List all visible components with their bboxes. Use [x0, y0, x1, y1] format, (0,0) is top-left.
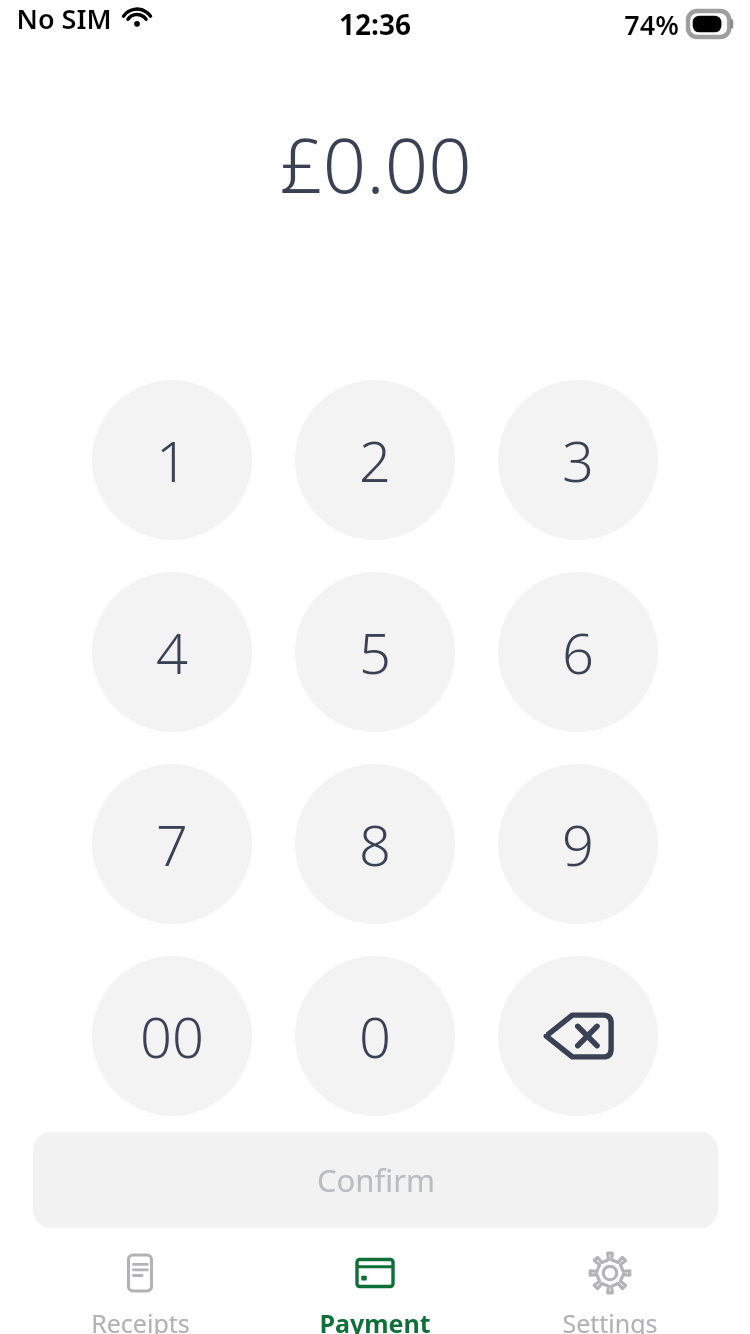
- button[interactable]: 6: [498, 572, 658, 732]
- button[interactable]: 0: [295, 956, 455, 1116]
- button[interactable]: Settings: [515, 1240, 705, 1334]
- staticText: Settings: [562, 1306, 658, 1334]
- staticText: 0: [359, 998, 391, 1074]
- button[interactable]: Payment: [280, 1240, 470, 1334]
- button[interactable]: 00: [92, 956, 252, 1116]
- button[interactable]: 7: [92, 764, 252, 924]
- staticText: 6: [562, 614, 594, 690]
- button[interactable]: 2: [295, 380, 455, 540]
- staticText: 00: [140, 998, 204, 1074]
- staticText: 2: [359, 422, 391, 498]
- staticText: 4: [156, 614, 188, 690]
- staticText: 12:36: [339, 5, 411, 43]
- button[interactable]: 4: [92, 572, 252, 732]
- staticText: Payment: [319, 1306, 431, 1334]
- staticText: £0.00: [279, 112, 472, 212]
- staticText: 5: [359, 614, 391, 690]
- button[interactable]: 1: [92, 380, 252, 540]
- staticText: 3: [562, 422, 594, 498]
- staticText: Receipts: [91, 1306, 190, 1334]
- staticText: 1: [156, 422, 188, 498]
- staticText: 9: [562, 806, 594, 882]
- button[interactable]: 5: [295, 572, 455, 732]
- button[interactable]: Receipts: [45, 1240, 235, 1334]
- button[interactable]: 8: [295, 764, 455, 924]
- staticText: 74%: [624, 6, 679, 43]
- staticText: No SIM: [16, 0, 112, 37]
- staticText: Confirm: [317, 1159, 435, 1201]
- button[interactable]: Backspace: [498, 956, 658, 1116]
- staticText: 8: [359, 806, 391, 882]
- button[interactable]: 3: [498, 380, 658, 540]
- button[interactable]: 9: [498, 764, 658, 924]
- staticText: 7: [156, 806, 188, 882]
- button[interactable]: Confirm: [33, 1132, 718, 1228]
